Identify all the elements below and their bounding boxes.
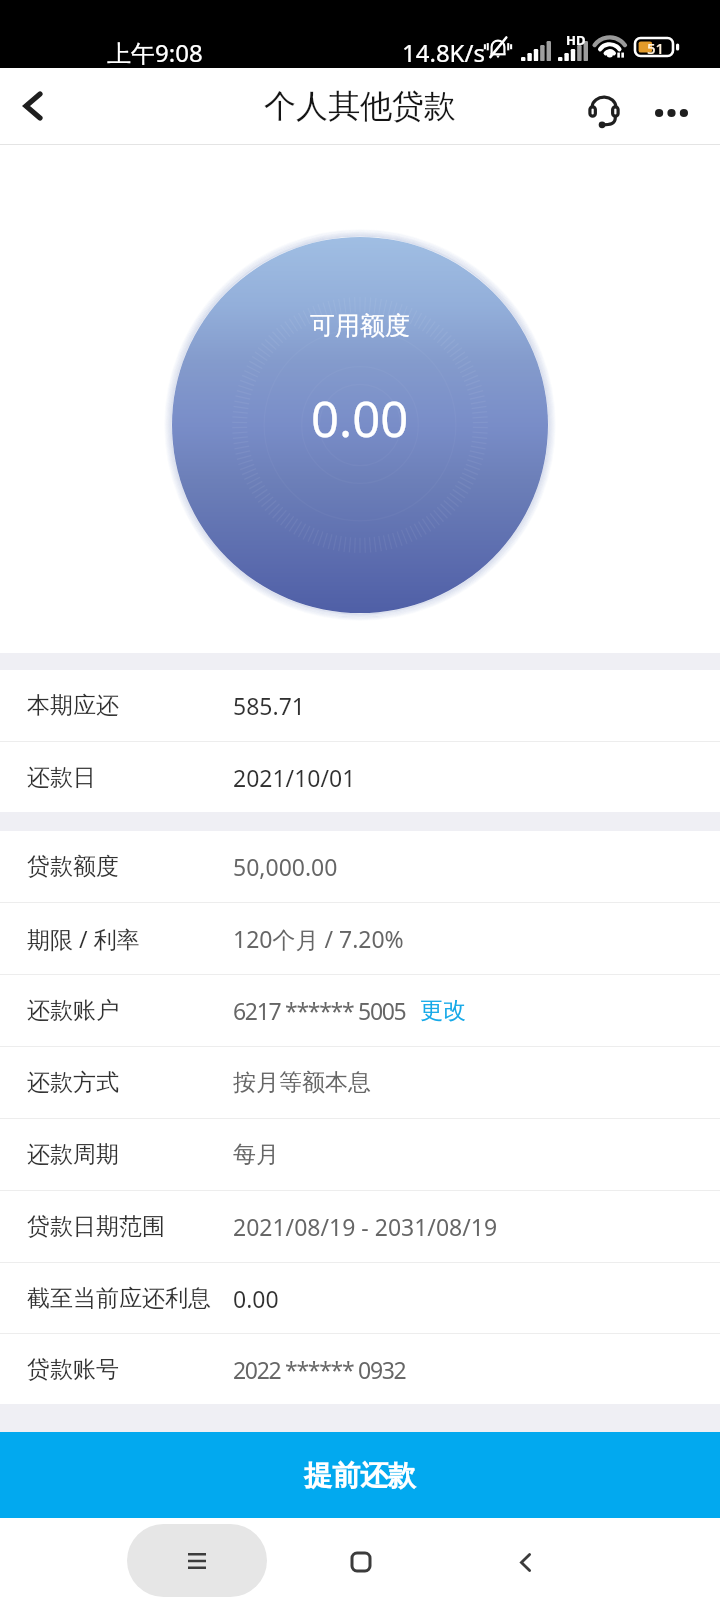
staticText: 按月等额本息 xyxy=(233,1068,371,1097)
button[interactable]: 贷款日期范围 xyxy=(0,1191,720,1262)
staticText: 6217 ****** 5005 xyxy=(233,995,406,1026)
staticText: 还款周期 xyxy=(27,1140,119,1169)
staticText: 2022 ****** 0932 xyxy=(233,1354,406,1385)
button[interactable]: 期限 / 利率 xyxy=(0,903,720,974)
button[interactable]: 还款日 xyxy=(0,742,720,812)
button[interactable]: 本期应还 xyxy=(0,670,720,741)
button[interactable]: 截至当前应还利息 xyxy=(0,1263,720,1333)
staticText: 上午9:08 xyxy=(107,36,203,69)
button[interactable]: Home xyxy=(331,1532,391,1592)
staticText: 0.00 xyxy=(311,385,409,452)
button[interactable]: Recent apps xyxy=(127,1524,267,1597)
staticText: 贷款账号 xyxy=(27,1355,119,1384)
staticText: 50,000.00 xyxy=(233,851,338,882)
staticText: 还款日 xyxy=(27,763,96,792)
button[interactable]: Back xyxy=(495,1532,555,1592)
staticText: 585.71 xyxy=(233,690,305,721)
staticText: 2021/10/01 xyxy=(233,762,356,793)
staticText: 贷款额度 xyxy=(27,852,119,881)
staticText: 可用额度 xyxy=(310,310,410,341)
staticText: 0.00 xyxy=(233,1283,279,1314)
button[interactable]: 提前还款 xyxy=(0,1432,720,1518)
staticText: 提前还款 xyxy=(304,1458,416,1493)
button[interactable]: 贷款额度 xyxy=(0,831,720,902)
button[interactable]: 还款账户 xyxy=(0,975,720,1046)
staticText: 还款账户 xyxy=(27,996,119,1025)
button[interactable]: 还款周期 xyxy=(0,1119,720,1190)
button[interactable]: Customer service xyxy=(575,82,633,140)
button[interactable]: More options xyxy=(642,84,700,142)
button[interactable]: 贷款账号 xyxy=(0,1334,720,1404)
staticText: 本期应还 xyxy=(27,691,119,720)
staticText: 120个月 / 7.20% xyxy=(233,923,404,954)
staticText: 贷款日期范围 xyxy=(27,1212,165,1241)
staticText: 14.8K/s xyxy=(402,36,485,69)
staticText: 个人其他贷款 xyxy=(264,86,456,126)
staticText: HD xyxy=(566,31,586,49)
staticText: 截至当前应还利息 xyxy=(27,1284,211,1313)
staticText: 还款方式 xyxy=(27,1068,119,1097)
staticText: 每月 xyxy=(233,1140,279,1169)
staticText: 期限 / 利率 xyxy=(27,923,140,954)
button[interactable]: Back xyxy=(4,77,62,135)
button[interactable]: 还款方式 xyxy=(0,1047,720,1118)
staticText: 2021/08/19 - 2031/08/19 xyxy=(233,1211,498,1242)
staticText: 51 xyxy=(647,38,665,58)
staticText: 更改 xyxy=(420,996,466,1025)
